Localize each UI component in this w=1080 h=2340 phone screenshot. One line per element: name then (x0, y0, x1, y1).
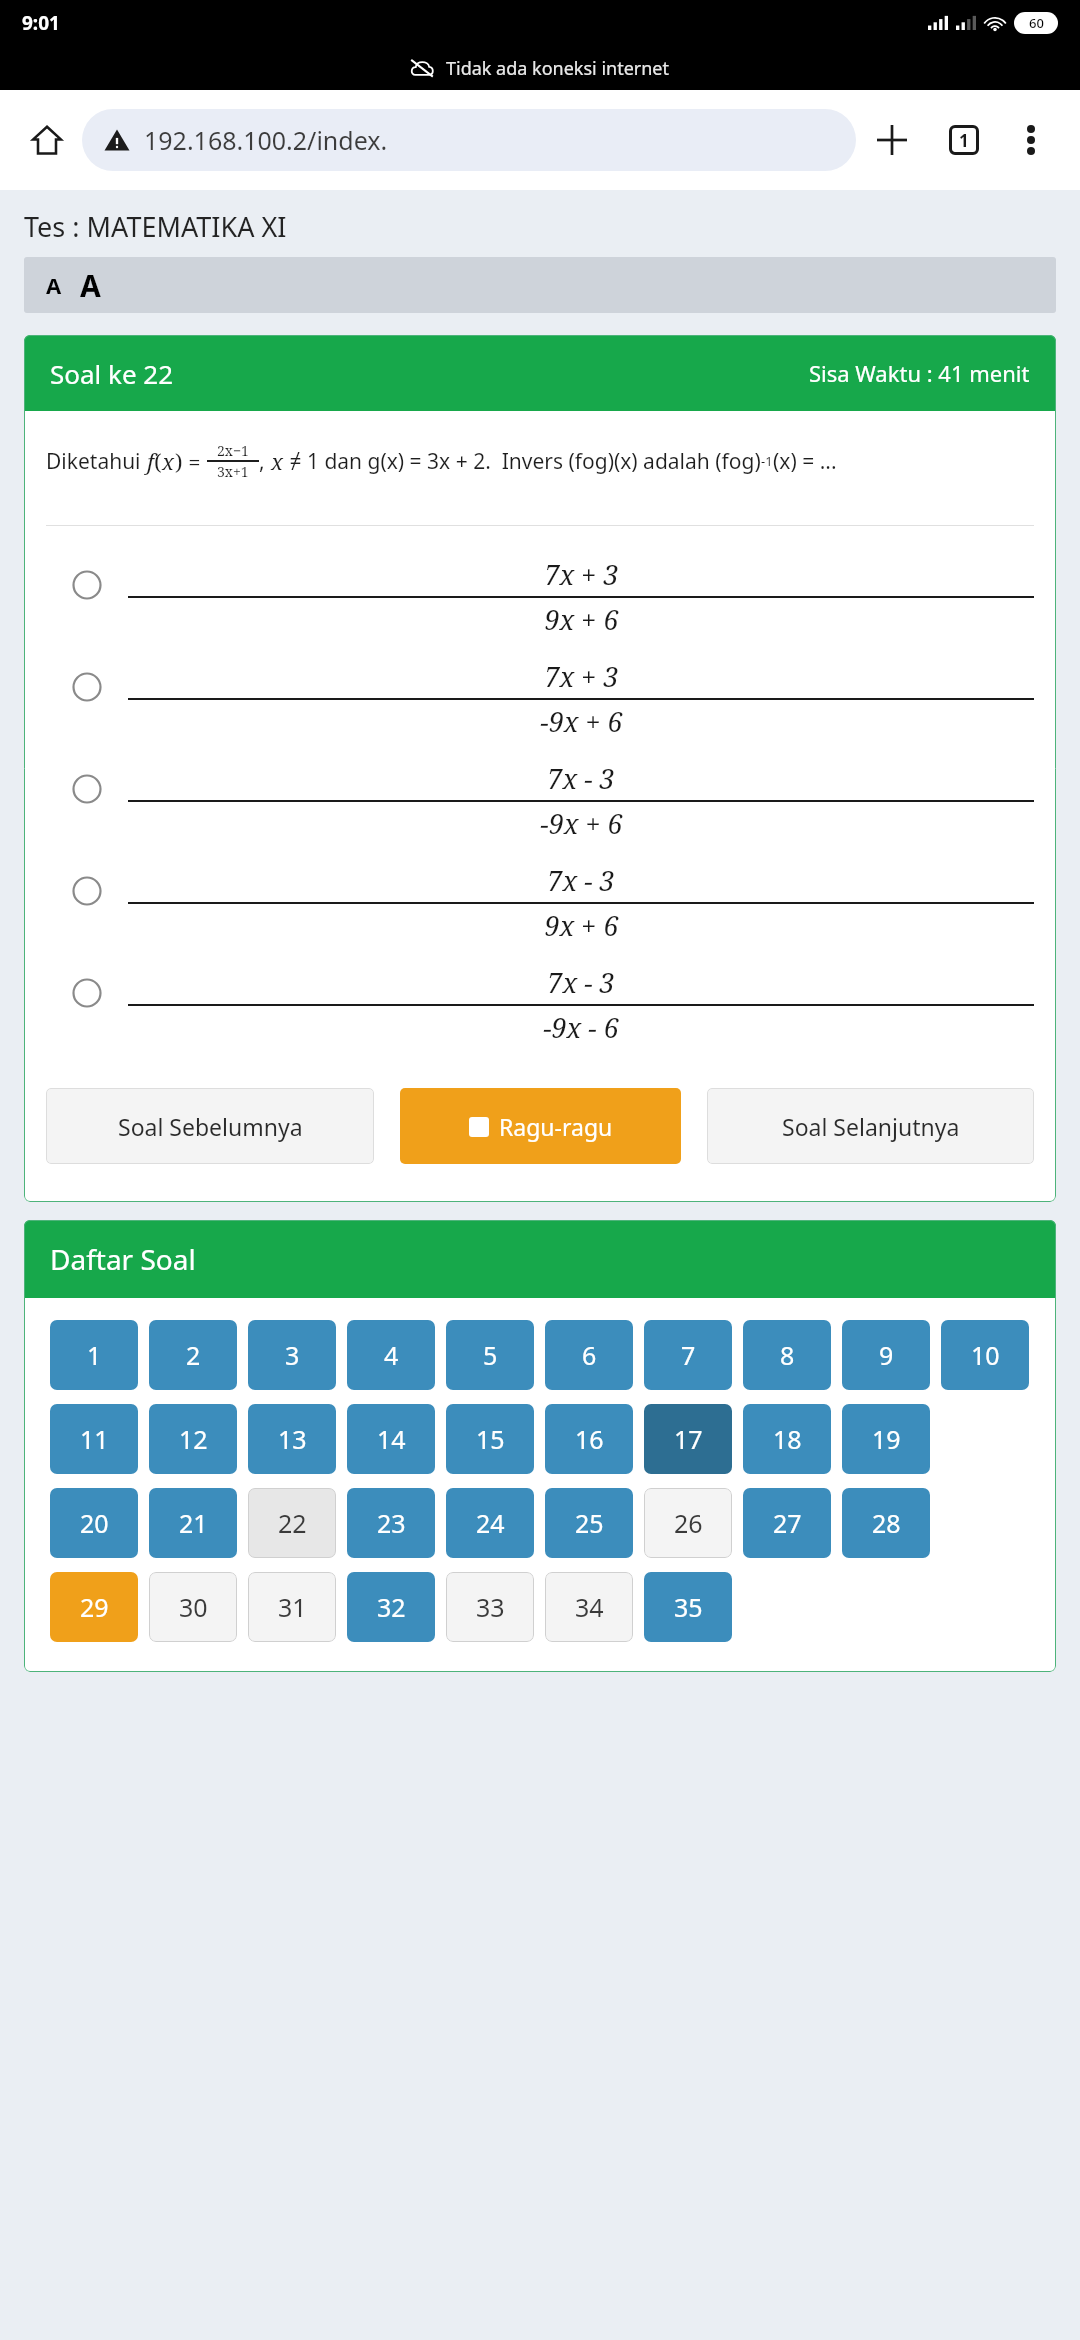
staticText: 22 (278, 1506, 307, 1540)
staticText: 16 (575, 1422, 604, 1456)
button[interactable]: 2 (149, 1320, 237, 1390)
button[interactable]: 11 (50, 1404, 138, 1474)
staticText: 7x − 3 (547, 964, 615, 1001)
staticText: ) = (175, 446, 207, 476)
staticText: 192.168.100.2/index. (144, 123, 388, 157)
staticText: 11 (80, 1422, 109, 1456)
button[interactable]: 10 (941, 1320, 1029, 1390)
staticText: −9x − 6 (543, 1009, 619, 1046)
button[interactable]: A (76, 265, 105, 306)
staticText: ( (154, 446, 162, 476)
staticText: 9x + 6 (544, 601, 619, 638)
staticText: f (147, 446, 154, 476)
staticText: Diketahui (46, 447, 147, 476)
button[interactable]: 15 (446, 1404, 534, 1474)
staticText: 29 (80, 1590, 109, 1624)
button[interactable]: 22 (248, 1488, 336, 1558)
staticText: 33 (476, 1590, 505, 1624)
staticText: Tes : MATEMATIKA XI (24, 208, 287, 245)
staticText: 26 (674, 1506, 703, 1540)
staticText: 4 (384, 1338, 399, 1372)
staticText: ≠ 1 dan g(x) = 3x + 2. Invers (fog)(x) a… (284, 447, 761, 476)
staticText: 30 (179, 1590, 208, 1624)
staticText: 13 (278, 1422, 307, 1456)
button[interactable]: 35 (644, 1572, 732, 1642)
staticText: 7x − 3 (547, 760, 615, 797)
button[interactable]: Soal Sebelumnya (46, 1088, 374, 1164)
staticText: 7 (681, 1338, 696, 1372)
button[interactable]: 7x − 3 (46, 948, 1034, 1050)
button[interactable]: 3 (248, 1320, 336, 1390)
staticText: 60 (1029, 14, 1044, 32)
staticText: x (271, 446, 284, 476)
button[interactable]: 7x + 3 (46, 642, 1034, 744)
button[interactable]: 28 (842, 1488, 930, 1558)
button[interactable]: 18 (743, 1404, 831, 1474)
staticText: −9x + 6 (540, 703, 623, 740)
button[interactable]: 17 (644, 1404, 732, 1474)
button[interactable]: 4 (347, 1320, 435, 1390)
staticText: A (80, 265, 101, 306)
button[interactable]: 12 (149, 1404, 237, 1474)
button[interactable]: 21 (149, 1488, 237, 1558)
button[interactable]: 33 (446, 1572, 534, 1642)
staticText: 28 (872, 1506, 901, 1540)
button[interactable]: 26 (644, 1488, 732, 1558)
staticText: −9x + 6 (540, 805, 623, 842)
button[interactable]: 13 (248, 1404, 336, 1474)
button[interactable]: Ragu-ragu (400, 1088, 681, 1164)
staticText: 21 (179, 1506, 208, 1540)
staticText: 2 (186, 1338, 201, 1372)
button[interactable]: 31 (248, 1572, 336, 1642)
button[interactable]: New tab (856, 104, 928, 176)
staticText: 9 (879, 1338, 894, 1372)
button[interactable]: Home (18, 111, 76, 169)
button[interactable]: 7x − 3 (46, 744, 1034, 846)
button[interactable]: 27 (743, 1488, 831, 1558)
button[interactable]: 14 (347, 1404, 435, 1474)
button[interactable]: 29 (50, 1572, 138, 1642)
staticText: Soal Sebelumnya (118, 1111, 303, 1142)
button[interactable]: 1 (50, 1320, 138, 1390)
staticText: 7x + 3 (544, 658, 619, 695)
button[interactable]: More options (1000, 109, 1062, 171)
button[interactable]: 23 (347, 1488, 435, 1558)
staticText: 27 (773, 1506, 802, 1540)
staticText: 23 (377, 1506, 406, 1540)
button[interactable]: 8 (743, 1320, 831, 1390)
staticText: -1 (761, 452, 773, 470)
staticText: 5 (483, 1338, 498, 1372)
staticText: 35 (674, 1590, 703, 1624)
button[interactable]: 19 (842, 1404, 930, 1474)
staticText: 7x + 3 (544, 556, 619, 593)
staticText: 31 (278, 1590, 307, 1624)
staticText: Soal ke 22 (50, 356, 174, 391)
button[interactable]: 16 (545, 1404, 633, 1474)
button[interactable]: 30 (149, 1572, 237, 1642)
staticText: 24 (476, 1506, 505, 1540)
staticText: 3 (285, 1338, 300, 1372)
staticText: 17 (674, 1422, 703, 1456)
staticText: 12 (179, 1422, 208, 1456)
button[interactable]: 32 (347, 1572, 435, 1642)
button[interactable]: 7x − 3 (46, 846, 1034, 948)
button[interactable]: 6 (545, 1320, 633, 1390)
button[interactable]: 5 (446, 1320, 534, 1390)
button[interactable]: 34 (545, 1572, 633, 1642)
button[interactable]: 7x + 3 (46, 550, 1034, 642)
staticText: (x) = ... (773, 447, 837, 476)
staticText: 8 (780, 1338, 795, 1372)
button[interactable]: 20 (50, 1488, 138, 1558)
staticText: 19 (872, 1422, 901, 1456)
button[interactable]: A (42, 270, 66, 300)
button[interactable]: 9 (842, 1320, 930, 1390)
button[interactable]: 7 (644, 1320, 732, 1390)
button[interactable]: 192.168.100.2/index. (82, 109, 856, 171)
staticText: Sisa Waktu : 41 menit (809, 358, 1030, 388)
button[interactable]: Soal Selanjutnya (707, 1088, 1034, 1164)
staticText: 9x + 6 (544, 907, 619, 944)
button[interactable]: Tabs (928, 104, 1000, 176)
button[interactable]: 25 (545, 1488, 633, 1558)
button[interactable]: 24 (446, 1488, 534, 1558)
staticText: A (46, 270, 62, 300)
